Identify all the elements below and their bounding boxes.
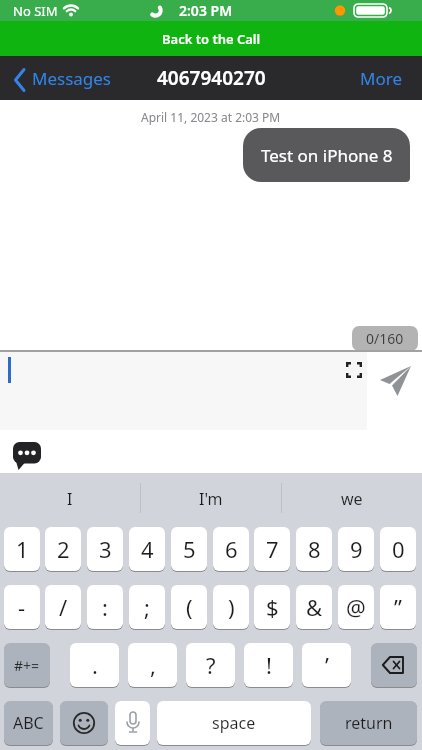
button[interactable] — [115, 701, 150, 745]
staticText: ” — [394, 592, 402, 622]
button[interactable] — [374, 355, 416, 399]
button[interactable]: 1 — [4, 527, 40, 571]
staticText: ’ — [325, 650, 329, 680]
staticText: 9 — [350, 534, 363, 564]
staticText: I'm — [199, 488, 223, 510]
button[interactable]: 2 — [45, 527, 81, 571]
button[interactable]: 4 — [129, 527, 165, 571]
staticText: Back to the Call — [162, 30, 261, 48]
button[interactable]: ? — [186, 643, 235, 687]
button[interactable]: , — [128, 643, 177, 687]
staticText: ! — [266, 650, 272, 680]
button[interactable] — [8, 56, 123, 100]
staticText: 4 — [141, 534, 154, 564]
staticText: : — [102, 592, 108, 622]
staticText: No SIM — [13, 2, 58, 20]
staticText: ( — [186, 592, 193, 622]
button[interactable]: . — [70, 643, 119, 687]
button[interactable]: / — [45, 585, 81, 629]
staticText: we — [341, 488, 363, 510]
staticText: 0/160 — [366, 329, 404, 348]
staticText: / — [59, 592, 68, 622]
staticText: space — [212, 712, 256, 734]
staticText: ; — [144, 592, 150, 622]
button[interactable] — [60, 701, 108, 745]
staticText: & — [306, 592, 323, 622]
button[interactable]: ’ — [302, 643, 351, 687]
staticText: 5 — [183, 534, 196, 564]
staticText: return — [345, 712, 393, 734]
button[interactable]: 0 — [380, 527, 416, 571]
staticText: #+= — [14, 656, 40, 675]
staticText: ? — [206, 650, 216, 680]
button[interactable]: ; — [129, 585, 165, 629]
button[interactable]: $ — [254, 585, 290, 629]
staticText: 2:03 PM — [179, 1, 233, 20]
button[interactable]: 3 — [87, 527, 123, 571]
staticText: 7 — [266, 534, 279, 564]
button[interactable]: More — [350, 56, 412, 100]
button[interactable] — [343, 359, 365, 381]
button[interactable]: 6 — [213, 527, 249, 571]
button[interactable]: #+= — [4, 643, 50, 687]
staticText: 0 — [392, 534, 405, 564]
staticText: April 11, 2023 at 2:03 PM — [141, 109, 281, 125]
staticText: Test on iPhone 8 — [261, 144, 393, 167]
button[interactable]: space — [157, 701, 311, 745]
staticText: Messages — [32, 67, 112, 90]
button[interactable]: ” — [380, 585, 416, 629]
staticText: $ — [266, 592, 279, 622]
button[interactable]: @ — [338, 585, 374, 629]
button[interactable]: 8 — [296, 527, 332, 571]
button[interactable]: we — [282, 477, 422, 521]
staticText: - — [18, 592, 26, 622]
staticText: , — [150, 650, 156, 680]
staticText: ) — [228, 592, 235, 622]
staticText: 2 — [57, 534, 70, 564]
button[interactable] — [0, 352, 367, 430]
button[interactable]: 9 — [338, 527, 374, 571]
button[interactable] — [8, 438, 44, 474]
button[interactable]: - — [4, 585, 40, 629]
staticText: . — [92, 650, 98, 680]
staticText: More — [360, 67, 402, 90]
staticText: 4067940270 — [157, 65, 266, 91]
button[interactable]: I'm — [141, 477, 281, 521]
button[interactable]: return — [320, 701, 417, 745]
staticText: I — [67, 488, 73, 510]
staticText: 3 — [99, 534, 112, 564]
button[interactable]: & — [296, 585, 332, 629]
button[interactable]: : — [87, 585, 123, 629]
staticText: ABC — [13, 712, 44, 734]
staticText: @ — [346, 592, 366, 622]
button[interactable]: Back to the Call — [0, 21, 422, 56]
staticText: 1 — [16, 534, 29, 564]
staticText: 8 — [308, 534, 321, 564]
staticText: 6 — [225, 534, 238, 564]
button[interactable]: ABC — [4, 701, 53, 745]
button[interactable]: 7 — [254, 527, 290, 571]
button[interactable] — [371, 643, 417, 687]
button[interactable]: ! — [244, 643, 293, 687]
button[interactable]: I — [0, 477, 140, 521]
button[interactable]: 5 — [171, 527, 207, 571]
button[interactable]: ) — [213, 585, 249, 629]
button[interactable]: ( — [171, 585, 207, 629]
